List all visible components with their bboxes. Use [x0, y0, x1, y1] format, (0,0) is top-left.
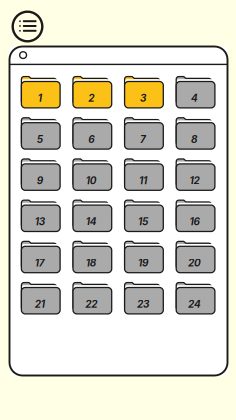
button[interactable]: Folder 8 — [175, 115, 215, 147]
button[interactable]: Folder 14 — [72, 197, 112, 229]
staticText: 11 — [139, 174, 147, 187]
button[interactable]: Folder 22 — [72, 280, 112, 312]
staticText: 19 — [138, 257, 148, 269]
button[interactable]: Folder 1 — [20, 74, 60, 106]
button[interactable]: Folder 2 — [72, 74, 112, 106]
button[interactable]: Folder 10 — [72, 156, 112, 188]
button[interactable]: Folder 12 — [175, 156, 215, 188]
staticText: 12 — [190, 174, 200, 187]
button[interactable]: Folder 4 — [175, 74, 215, 106]
button[interactable]: Folder 6 — [72, 115, 112, 147]
button[interactable]: Folder 19 — [123, 238, 163, 270]
staticText: 2 — [88, 92, 94, 104]
staticText: 22 — [85, 298, 97, 310]
staticText: 24 — [188, 298, 201, 310]
button[interactable]: Folder 16 — [175, 197, 215, 229]
button[interactable]: Folder 5 — [20, 115, 60, 147]
staticText: 8 — [191, 133, 198, 145]
button[interactable]: Folder 3 — [123, 74, 163, 106]
staticText: 5 — [37, 133, 43, 145]
button[interactable]: Folder 24 — [175, 280, 215, 312]
staticText: 13 — [35, 216, 45, 228]
staticText: 17 — [35, 257, 45, 269]
button[interactable]: Folder 17 — [20, 238, 60, 270]
button[interactable]: Folder 9 — [20, 156, 60, 188]
staticText: 9 — [37, 174, 43, 187]
staticText: 21 — [35, 298, 45, 310]
staticText: 20 — [188, 257, 201, 269]
button[interactable]: Folder 15 — [123, 197, 163, 229]
staticText: 3 — [140, 92, 146, 104]
staticText: 4 — [191, 92, 198, 104]
staticText: 7 — [140, 133, 146, 145]
staticText: 6 — [88, 133, 94, 145]
staticText: 23 — [137, 298, 149, 310]
button[interactable]: Menu — [12, 11, 43, 42]
button[interactable]: Folder 7 — [123, 115, 163, 147]
staticText: 15 — [138, 216, 148, 228]
staticText: 18 — [86, 257, 97, 269]
button[interactable]: Folder 20 — [175, 238, 215, 270]
button[interactable]: Folder 18 — [72, 238, 112, 270]
button[interactable]: Folder 13 — [20, 197, 60, 229]
staticText: 16 — [190, 216, 200, 228]
button[interactable]: Folder 23 — [123, 280, 163, 312]
button[interactable]: Folder 21 — [20, 280, 60, 312]
staticText: 14 — [86, 216, 97, 228]
button[interactable]: Folder 11 — [123, 156, 163, 188]
staticText: 10 — [86, 174, 97, 187]
staticText: 1 — [38, 92, 42, 104]
